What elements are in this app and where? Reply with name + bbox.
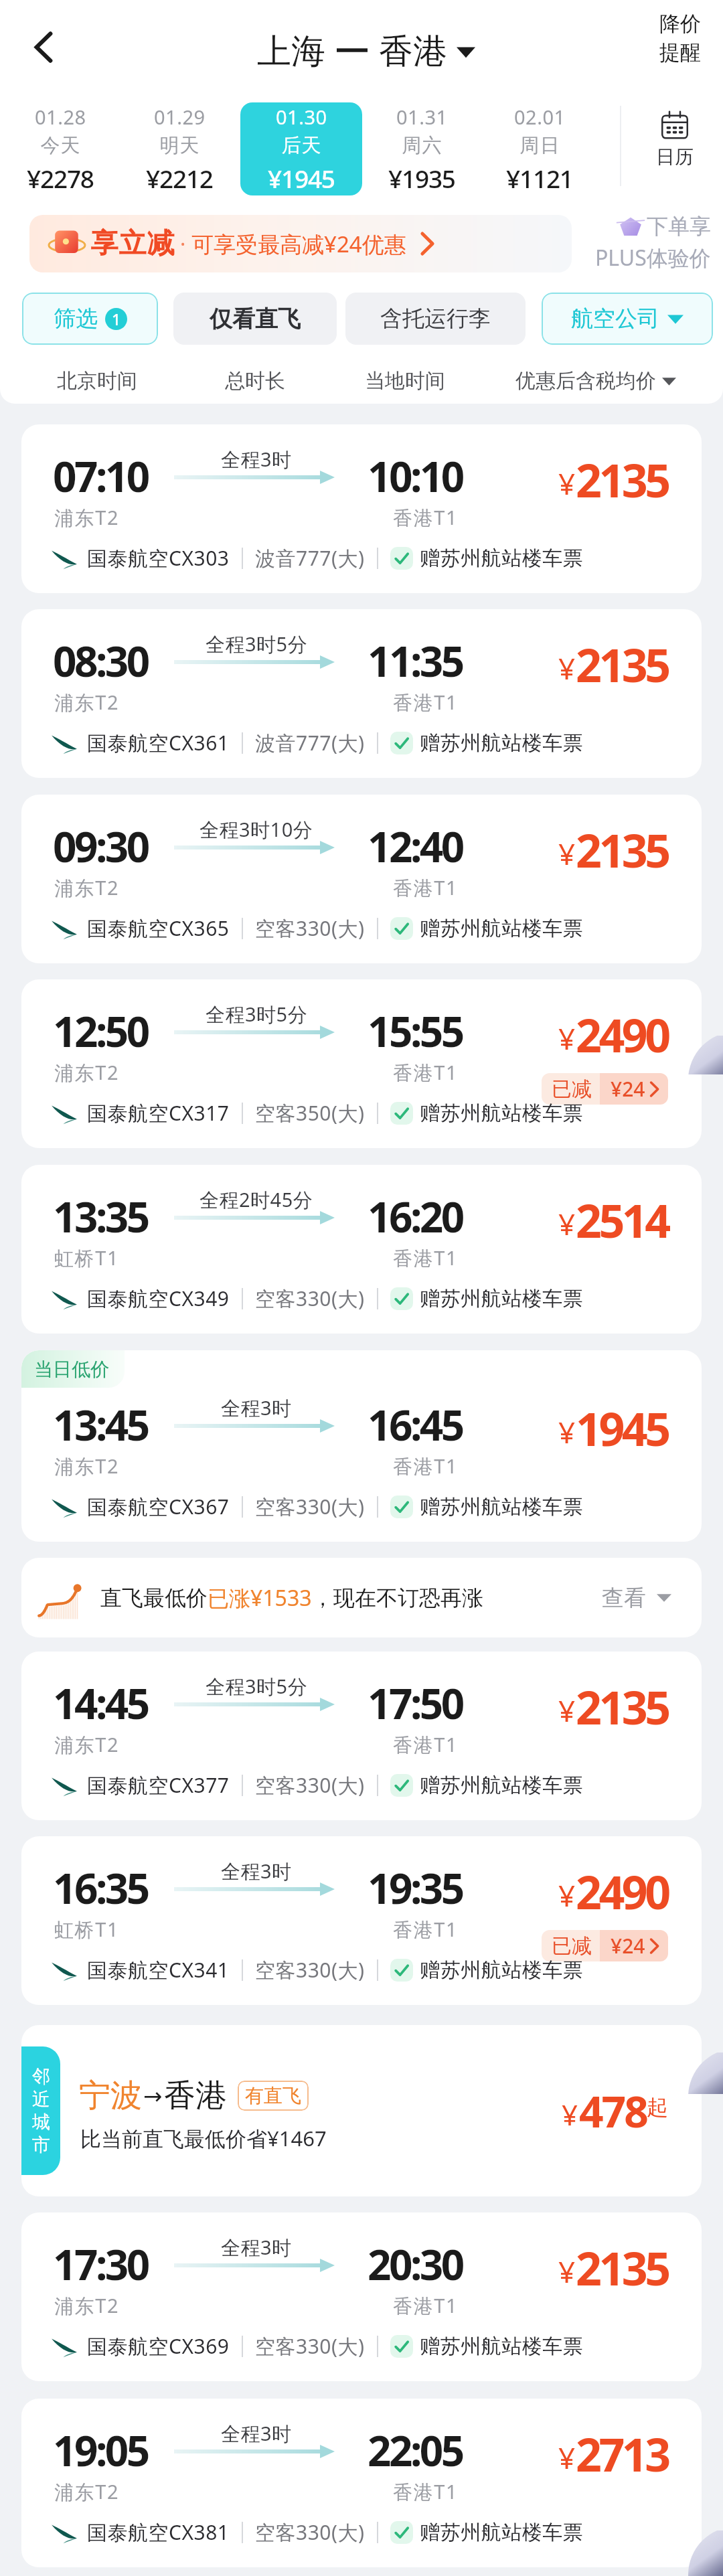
staticText: 12:40 [368, 818, 463, 874]
staticText: 全程2时45分 [199, 1186, 313, 1213]
staticText: 19:35 [368, 1860, 463, 1916]
staticText: ¥24 [611, 1075, 645, 1103]
staticText: 国泰航空CX365 [87, 914, 230, 942]
staticText: 日历 [656, 145, 694, 169]
staticText: 邻 [32, 2065, 50, 2088]
staticText: ¥ [558, 1204, 576, 1244]
staticText: 全程3时 [221, 2234, 292, 2261]
staticText: → [143, 2083, 163, 2109]
staticText: ¥2278 [27, 161, 94, 195]
button[interactable]: 北京时间 [44, 358, 151, 404]
staticText: 浦东T2 [54, 874, 120, 901]
staticText: 12:50 [53, 1003, 148, 1059]
staticText: 当地时间 [365, 368, 445, 394]
staticText: 浦东T2 [54, 2478, 120, 2505]
button[interactable]: 优惠后含税均价 [509, 358, 683, 404]
staticText: 国泰航空CX377 [87, 1771, 230, 1799]
staticText: 10:10 [368, 448, 463, 504]
button[interactable]: 02.01 [479, 102, 600, 195]
button[interactable]: 12:50 [21, 979, 702, 1148]
button[interactable]: 13:35 [21, 1165, 702, 1334]
button[interactable]: 已减 [542, 1930, 668, 1961]
staticText: ¥ [558, 2251, 576, 2291]
button[interactable]: 享立减 [29, 215, 572, 272]
button[interactable]: 仅看直飞 [173, 293, 337, 345]
button[interactable]: 16:35 [21, 1836, 702, 2005]
staticText: 空客330(大) [255, 1285, 365, 1312]
staticText: 香港T1 [393, 1059, 459, 1086]
staticText: ¥ [558, 463, 576, 503]
button[interactable]: 08:30 [21, 609, 702, 778]
staticText: ¥ [558, 1412, 576, 1452]
staticText: 航空公司 [571, 305, 659, 333]
staticText: 香港T1 [393, 504, 459, 531]
button[interactable]: 上海 [257, 35, 475, 76]
button[interactable]: 14:45 [21, 1652, 702, 1820]
button[interactable]: Assistant [681, 1036, 723, 1074]
button[interactable]: 09:30 [21, 795, 702, 963]
staticText: 城 [32, 2111, 50, 2134]
button[interactable]: 含托运行李 [345, 293, 526, 345]
button[interactable]: 下单享 [577, 212, 711, 272]
button[interactable]: 01.30 [240, 102, 362, 195]
button[interactable]: 已减 [542, 1073, 668, 1105]
staticText: 国泰航空CX349 [87, 1285, 230, 1312]
button[interactable]: 日历 [632, 111, 718, 169]
staticText: 提醒 [659, 39, 701, 66]
staticText: 1945 [576, 1397, 668, 1459]
button[interactable]: Assistant [681, 2052, 723, 2094]
staticText: 空客330(大) [255, 2332, 365, 2360]
staticText: 国泰航空CX303 [87, 544, 230, 572]
button[interactable]: 总时长 [202, 358, 309, 404]
staticText: 赠苏州航站楼车票 [420, 1101, 583, 1126]
button[interactable]: Back [15, 19, 72, 75]
button[interactable]: 17:30 [21, 2212, 702, 2381]
staticText: 周六 [402, 133, 442, 158]
button[interactable]: 01.31 [361, 102, 483, 195]
staticText: 周日 [519, 133, 560, 158]
button[interactable]: 01.28 [0, 102, 121, 195]
button[interactable]: 07:10 [21, 424, 702, 593]
staticText: 13:45 [53, 1396, 148, 1453]
staticText: 空客330(大) [255, 1493, 365, 1520]
button[interactable]: 邻 [21, 2025, 702, 2196]
button[interactable]: 当日低价 [21, 1350, 702, 1542]
staticText: PLUS体验价 [595, 243, 711, 272]
button[interactable]: 19:05 [21, 2399, 702, 2567]
staticText: 已涨¥1533 [208, 1583, 312, 1613]
staticText: 近 [32, 2088, 50, 2111]
staticText: 01.28 [35, 104, 86, 130]
button[interactable]: 直飞最低价 [21, 1558, 702, 1637]
staticText: 01.29 [154, 104, 206, 130]
staticText: 国泰航空CX317 [87, 1099, 230, 1127]
button[interactable]: Assistant [681, 2530, 723, 2576]
button[interactable]: 01.29 [118, 102, 240, 195]
staticText: 赠苏州航站楼车票 [420, 1773, 583, 1798]
button[interactable]: 航空公司 [542, 293, 713, 345]
staticText: 08:30 [53, 633, 148, 689]
staticText: 已减 [552, 1076, 592, 1102]
staticText: 下单享 [647, 213, 711, 240]
staticText: ¥ [558, 833, 576, 874]
staticText: 享立减 [90, 226, 175, 261]
staticText: 后天 [281, 133, 321, 158]
button[interactable]: 降价 [648, 11, 712, 66]
staticText: 全程3时5分 [206, 1673, 308, 1700]
staticText: 17:30 [53, 2236, 148, 2292]
staticText: 香港T1 [393, 2478, 459, 2505]
staticText: 香港T1 [393, 689, 459, 716]
button[interactable]: 筛选 [22, 293, 158, 345]
staticText: 香港T1 [393, 1916, 459, 1943]
staticText: 直飞最低价 [100, 1585, 208, 1611]
staticText: 可享受最高减¥24优惠 [191, 229, 406, 259]
staticText: 浦东T2 [54, 689, 120, 716]
staticText: 16:45 [368, 1396, 463, 1453]
staticText: 有直飞 [245, 2084, 301, 2107]
staticText: 2490 [576, 1003, 668, 1066]
staticText: 19:05 [53, 2422, 148, 2478]
staticText: 浦东T2 [54, 2292, 120, 2319]
staticText: 全程3时 [221, 1858, 292, 1884]
staticText: 香港T1 [393, 874, 459, 901]
staticText: ¥24 [611, 1932, 645, 1959]
button[interactable]: 当地时间 [351, 358, 459, 404]
